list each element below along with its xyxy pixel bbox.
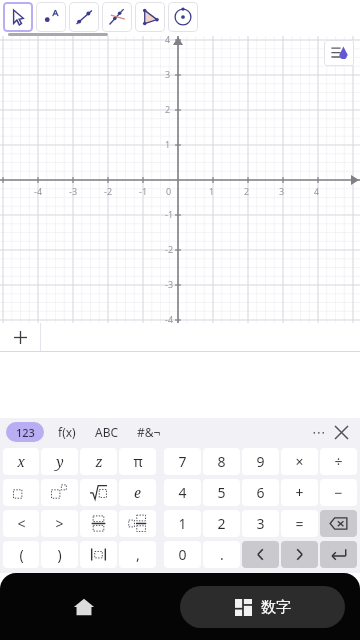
staticText: 2 xyxy=(217,514,226,533)
button[interactable]: Move tool xyxy=(3,2,33,32)
button[interactable]: 6 xyxy=(242,479,279,506)
staticText: z xyxy=(95,452,103,471)
staticText: × xyxy=(295,452,304,471)
button[interactable] xyxy=(242,541,279,568)
staticText: 5 xyxy=(217,483,226,502)
staticText: 2 xyxy=(165,103,171,115)
button[interactable] xyxy=(80,479,117,506)
button[interactable]: 0 xyxy=(164,541,201,568)
staticText: 3 xyxy=(165,68,171,80)
staticText: ( xyxy=(19,545,24,564)
staticText: -2 xyxy=(104,185,113,197)
staticText: ABC xyxy=(95,424,119,440)
staticText: e xyxy=(134,483,141,502)
button[interactable]: ÷ xyxy=(320,448,357,475)
button[interactable]: Close keyboard xyxy=(330,421,352,443)
button[interactable]: Home xyxy=(62,585,106,629)
button[interactable]: . xyxy=(203,541,240,568)
staticText: − xyxy=(334,483,343,502)
button[interactable]: 1 xyxy=(164,510,201,537)
button[interactable]: x xyxy=(3,448,39,475)
button[interactable]: ABC xyxy=(90,422,124,442)
staticText: y xyxy=(56,452,64,471)
staticText: 数字 xyxy=(261,598,291,617)
staticText: 1 xyxy=(165,138,171,150)
button[interactable]: = xyxy=(281,510,318,537)
staticText: 8 xyxy=(217,452,226,471)
staticText: = xyxy=(295,514,304,533)
staticText: . xyxy=(220,545,224,564)
staticText: ) xyxy=(57,545,62,564)
staticText: > xyxy=(55,514,64,533)
staticText: ÷ xyxy=(334,452,343,471)
staticText: 1 xyxy=(178,514,187,533)
button[interactable]: ) xyxy=(41,541,78,568)
button[interactable] xyxy=(41,479,78,506)
button[interactable]: Perpendicular tool xyxy=(102,2,132,32)
button[interactable]: z xyxy=(80,448,117,475)
staticText: 3 xyxy=(279,185,285,197)
staticText: x xyxy=(17,452,25,471)
staticText: -3 xyxy=(165,278,174,290)
staticText: , xyxy=(136,545,140,564)
button[interactable]: 9 xyxy=(242,448,279,475)
staticText: 4 xyxy=(314,185,320,197)
button[interactable]: 7 xyxy=(164,448,201,475)
button[interactable]: , xyxy=(119,541,156,568)
button[interactable]: Polygon tool xyxy=(135,2,165,32)
staticText: -1 xyxy=(139,185,148,197)
staticText: f(x) xyxy=(58,424,76,440)
button[interactable]: Circle tool xyxy=(168,2,198,32)
staticText: #&¬ xyxy=(137,424,161,440)
staticText: -1 xyxy=(165,208,174,220)
button[interactable]: y xyxy=(41,448,78,475)
button[interactable]: 3 xyxy=(242,510,279,537)
button[interactable] xyxy=(320,510,357,537)
button[interactable]: #&¬ xyxy=(132,422,166,442)
staticText: 0 xyxy=(166,185,172,197)
staticText: -4 xyxy=(34,185,43,197)
button[interactable]: 5 xyxy=(203,479,240,506)
staticText: 6 xyxy=(256,483,265,502)
staticText: -2 xyxy=(165,243,174,255)
button[interactable]: e xyxy=(119,479,156,506)
button[interactable]: f(x) xyxy=(52,422,82,442)
button[interactable]: + xyxy=(281,479,318,506)
button[interactable]: More options xyxy=(308,421,330,443)
button[interactable]: 2 xyxy=(203,510,240,537)
staticText: ⋯ xyxy=(312,424,326,440)
button[interactable]: Add input xyxy=(0,323,40,351)
button[interactable] xyxy=(80,510,117,537)
button[interactable]: < xyxy=(3,510,39,537)
button[interactable]: ( xyxy=(3,541,39,568)
button[interactable]: × xyxy=(281,448,318,475)
staticText: 9 xyxy=(256,452,265,471)
button[interactable]: 8 xyxy=(203,448,240,475)
staticText: 3 xyxy=(256,514,265,533)
staticText: 123 xyxy=(16,425,35,440)
button[interactable] xyxy=(80,541,117,568)
button[interactable]: 123 xyxy=(6,422,44,442)
button[interactable]: 4 xyxy=(164,479,201,506)
button[interactable] xyxy=(281,541,318,568)
button[interactable]: 数字 xyxy=(180,586,345,628)
staticText: 4 xyxy=(178,483,187,502)
button[interactable]: π xyxy=(119,448,156,475)
button[interactable]: Line tool xyxy=(69,2,99,32)
button[interactable]: Graphics settings xyxy=(324,40,354,66)
button[interactable]: Point tool xyxy=(36,2,66,32)
staticText: 7 xyxy=(178,452,187,471)
staticText: -3 xyxy=(69,185,78,197)
staticText: 4 xyxy=(165,33,171,45)
button[interactable] xyxy=(320,541,357,568)
button[interactable]: > xyxy=(41,510,78,537)
staticText: + xyxy=(295,483,304,502)
button[interactable] xyxy=(119,510,156,537)
staticText: 2 xyxy=(244,185,250,197)
button[interactable] xyxy=(3,479,39,506)
staticText: 1 xyxy=(209,185,215,197)
staticText: < xyxy=(17,514,26,533)
button[interactable]: − xyxy=(320,479,357,506)
staticText: π xyxy=(133,452,143,471)
staticText: 0 xyxy=(178,545,187,564)
